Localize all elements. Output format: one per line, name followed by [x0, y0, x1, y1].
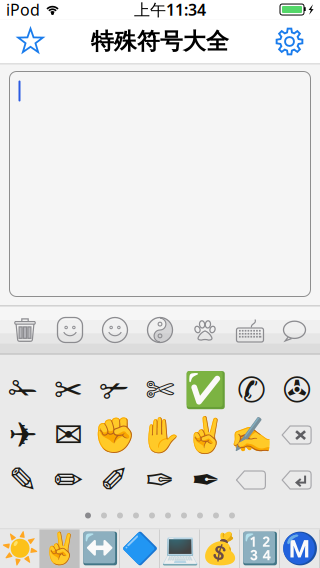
staticText: ✎ [8, 460, 37, 500]
button[interactable]: Sun symbols [0, 529, 40, 568]
staticText: ✏ [54, 460, 83, 500]
staticText: ✑ [145, 460, 174, 500]
staticText: 💰 [200, 531, 238, 566]
button[interactable]: Number symbols [240, 529, 280, 568]
staticText: ✍ [230, 415, 273, 455]
staticText: ✆ [237, 370, 266, 410]
button[interactable]: Clear text [2, 306, 47, 353]
staticText: iPod [6, 0, 40, 20]
button[interactable]: Money symbols [200, 529, 240, 568]
staticText: ✁ [8, 370, 37, 410]
button[interactable]: ✑ [137, 457, 183, 502]
button[interactable]: ✄ [137, 367, 183, 412]
button[interactable]: Smiley [92, 306, 137, 353]
staticText: ✒ [191, 460, 220, 500]
staticText: ✐ [100, 460, 129, 500]
staticText: ✃ [100, 370, 129, 410]
staticText: 🔷 [120, 531, 158, 566]
button[interactable]: ✇ [274, 367, 320, 412]
button[interactable]: ✉ [46, 412, 91, 457]
button[interactable]: Speech bubble [272, 306, 317, 353]
button[interactable]: Letter symbols [280, 529, 320, 568]
button[interactable] [229, 457, 274, 502]
staticText: ✉ [54, 415, 83, 455]
button[interactable]: Hand symbols [40, 529, 80, 568]
staticText: ✊ [93, 415, 136, 455]
button[interactable]: ✋ [137, 412, 183, 457]
staticText: ↔️ [80, 531, 118, 566]
button[interactable]: Arrow symbols [80, 529, 120, 568]
button[interactable]: ✅ [183, 367, 229, 412]
staticText: ✌ [184, 415, 227, 455]
button[interactable]: ✊ [91, 412, 137, 457]
staticText: ✄ [145, 370, 174, 410]
button[interactable]: Favorites [0, 19, 61, 63]
button[interactable]: ✈ [0, 412, 46, 457]
button[interactable]: Yin yang [137, 306, 182, 353]
staticText: 特殊符号大全 [91, 28, 229, 55]
staticText: ✇ [283, 370, 312, 410]
staticText: ✌️ [40, 531, 78, 566]
button[interactable]: ✍ [229, 412, 274, 457]
button[interactable]: ✐ [91, 457, 137, 502]
button[interactable] [274, 457, 320, 502]
staticText: 🔢 [240, 531, 278, 566]
button[interactable]: Shape symbols [120, 529, 160, 568]
button[interactable]: ✆ [229, 367, 274, 412]
button[interactable]: ✌ [183, 412, 229, 457]
staticText: 上午11:34 [134, 0, 206, 20]
button[interactable]: ✃ [91, 367, 137, 412]
button[interactable]: Smiley square [47, 306, 92, 353]
staticText: ✂ [54, 370, 83, 410]
button[interactable] [274, 412, 320, 457]
button[interactable]: ✒ [183, 457, 229, 502]
button[interactable]: ✏ [46, 457, 91, 502]
staticText: 💻 [160, 531, 198, 566]
button[interactable]: ✁ [0, 367, 46, 412]
button[interactable]: ✂ [46, 367, 91, 412]
staticText: ☀️ [0, 531, 38, 566]
button[interactable]: Settings [259, 19, 320, 63]
button[interactable]: ✎ [0, 457, 46, 502]
staticText: ✅ [184, 370, 227, 410]
button[interactable]: Device symbols [160, 529, 200, 568]
staticText: ✈ [8, 415, 37, 455]
button[interactable]: Keyboard [227, 306, 272, 353]
staticText: ✋ [138, 415, 181, 455]
staticText: Ⓜ️ [280, 531, 318, 566]
button[interactable]: Paw prints [182, 306, 227, 353]
